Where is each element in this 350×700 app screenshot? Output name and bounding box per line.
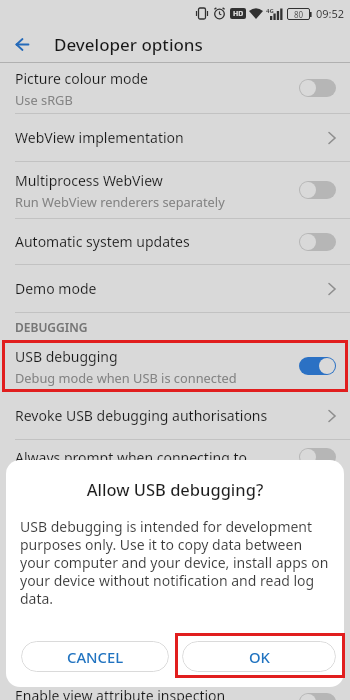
staticText: USB debugging (15, 347, 118, 366)
button[interactable] (0, 27, 44, 62)
button[interactable]: CANCEL (21, 641, 169, 672)
staticText: Allow USB debugging? (6, 478, 344, 500)
button[interactable] (299, 79, 336, 97)
staticText: WebView implementation (15, 128, 184, 147)
staticText: USB debugging is intended for developmen… (20, 517, 329, 608)
staticText: DEBUGGING (15, 319, 88, 335)
staticText: Run WebView renderers separately (15, 193, 225, 210)
staticText: Automatic system updates (15, 232, 190, 251)
button[interactable] (299, 181, 336, 199)
staticText: OK (249, 647, 270, 667)
staticText: 4G (266, 7, 274, 15)
button[interactable]: Automatic system updates (0, 219, 350, 264)
button[interactable]: OK (182, 641, 336, 672)
staticText: Revoke USB debugging authorisations (15, 406, 268, 425)
staticText: Developer options (54, 33, 203, 56)
staticText: Demo mode (15, 279, 97, 298)
staticText: Picture colour mode (15, 69, 148, 88)
staticText: Multiprocess WebView (15, 171, 163, 190)
button[interactable]: Demo mode (0, 265, 350, 312)
staticText: CANCEL (67, 647, 124, 667)
button[interactable] (299, 448, 336, 466)
button[interactable]: Multiprocess WebView (0, 162, 350, 218)
button[interactable]: Revoke USB debugging authorisations (0, 392, 350, 439)
button[interactable]: USB debugging (0, 340, 350, 392)
button[interactable] (299, 357, 336, 375)
staticText: Use sRGB (15, 91, 73, 108)
staticText: Enable view attribute inspection (15, 686, 226, 700)
button[interactable]: WebView implementation (0, 114, 350, 161)
button[interactable] (299, 233, 336, 251)
staticText: Debug mode when USB is connected (15, 369, 237, 386)
staticText: 09:52 (316, 6, 345, 21)
staticText: HD (233, 9, 244, 19)
staticText: Always prompt when connecting to (15, 448, 299, 467)
button[interactable]: Picture colour mode (0, 63, 350, 113)
button[interactable] (299, 693, 336, 700)
staticText: 80 (294, 9, 304, 20)
